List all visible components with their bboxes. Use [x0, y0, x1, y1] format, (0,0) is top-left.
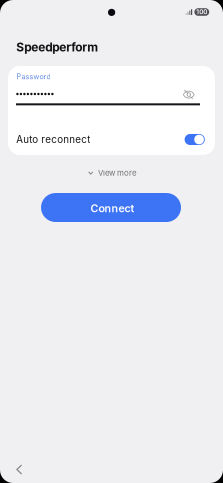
button[interactable]: Show password	[179, 84, 198, 103]
staticText: Password	[16, 72, 50, 81]
staticText: Auto reconnect	[16, 134, 90, 145]
staticText: 100	[196, 8, 207, 16]
staticText: Connect	[91, 202, 135, 215]
button[interactable]: Connect	[41, 193, 181, 222]
staticText: Speedperform	[16, 40, 98, 54]
staticText: View more	[98, 168, 137, 178]
button[interactable]: Auto reconnect	[8, 126, 215, 153]
button[interactable]: View more	[83, 165, 142, 181]
button[interactable]: Back	[8, 458, 30, 480]
